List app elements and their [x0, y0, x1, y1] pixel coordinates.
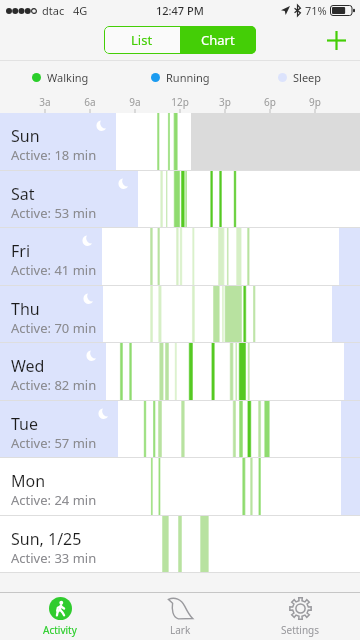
- button[interactable]: Chart: [180, 26, 256, 54]
- button[interactable]: Lark: [120, 593, 240, 640]
- staticText: Tue: [11, 413, 39, 435]
- staticText: 4G: [73, 3, 88, 18]
- staticText: Fri: [11, 240, 31, 262]
- button[interactable]: Running: [120, 70, 240, 85]
- button[interactable]: Walking: [0, 70, 120, 85]
- button[interactable]: List: [104, 26, 180, 54]
- staticText: Active: 41 min: [11, 261, 97, 279]
- staticText: 12p: [166, 95, 194, 109]
- staticText: Active: 24 min: [11, 491, 97, 509]
- button[interactable]: Sat: [0, 171, 360, 228]
- staticText: 3p: [211, 95, 239, 109]
- button[interactable]: Sun: [0, 113, 360, 171]
- staticText: Activity: [43, 623, 77, 637]
- staticText: List: [131, 31, 153, 49]
- button[interactable]: Fri: [0, 228, 360, 286]
- staticText: Running: [166, 70, 210, 85]
- staticText: Active: 57 min: [11, 434, 97, 452]
- staticText: Sleep: [293, 70, 322, 85]
- staticText: 12:47 PM: [156, 3, 204, 18]
- button[interactable]: Mon: [0, 458, 360, 516]
- staticText: 9p: [301, 95, 329, 109]
- staticText: Sat: [11, 183, 35, 205]
- staticText: Sun: [11, 125, 40, 147]
- staticText: 6p: [256, 95, 284, 109]
- staticText: Active: 70 min: [11, 319, 97, 337]
- button[interactable]: Sun, 1/25: [0, 516, 360, 573]
- button[interactable]: Settings: [240, 593, 360, 640]
- staticText: 3a: [31, 95, 59, 109]
- button[interactable]: Wed: [0, 343, 360, 401]
- staticText: Lark: [170, 623, 191, 637]
- button[interactable]: Thu: [0, 286, 360, 343]
- staticText: dtac: [42, 3, 65, 18]
- button[interactable]: Add: [312, 20, 360, 60]
- staticText: Settings: [281, 623, 320, 637]
- button[interactable]: Activity: [0, 593, 120, 640]
- staticText: Active: 53 min: [11, 204, 97, 222]
- staticText: 9a: [121, 95, 149, 109]
- staticText: Active: 82 min: [11, 376, 97, 394]
- staticText: Thu: [11, 298, 40, 320]
- button[interactable]: Sleep: [240, 70, 360, 85]
- staticText: Active: 33 min: [11, 549, 97, 567]
- staticText: 71%: [305, 3, 327, 18]
- staticText: Chart: [201, 31, 235, 49]
- button[interactable]: Tue: [0, 401, 360, 458]
- staticText: 6a: [76, 95, 104, 109]
- staticText: Walking: [47, 70, 89, 85]
- staticText: Sun, 1/25: [11, 528, 82, 550]
- staticText: Mon: [11, 470, 46, 492]
- staticText: Active: 18 min: [11, 146, 97, 164]
- staticText: Wed: [11, 355, 45, 377]
